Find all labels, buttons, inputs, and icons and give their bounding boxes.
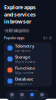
staticText: Database [15, 76, 33, 82]
staticText: Edge runtime [15, 71, 34, 75]
staticText: and services [4, 11, 36, 18]
staticText: Telemetry [15, 43, 34, 49]
staticText: Search [19, 97, 25, 99]
button[interactable]: All categories [4, 28, 30, 33]
staticText: Postgres 16 [15, 82, 32, 86]
button[interactable]: Storage [4, 53, 52, 64]
button[interactable]: Telemetry [4, 42, 52, 53]
staticText: Tap an app to open it in a new tab [18, 89, 38, 91]
button[interactable]: Database [4, 75, 52, 86]
staticText: All categories [9, 29, 28, 32]
button[interactable]: See all [43, 36, 52, 40]
staticText: Apps [30, 97, 34, 99]
button[interactable]: Home [7, 91, 17, 100]
staticText: Home [10, 97, 14, 99]
staticText: Object buckets [15, 60, 35, 64]
staticText: Popular apps [4, 36, 24, 40]
staticText: Explore apps [4, 4, 36, 11]
button[interactable]: Search [17, 91, 27, 100]
staticText: in browser [4, 18, 31, 25]
button[interactable]: Apps [27, 91, 37, 100]
staticText: Live metrics [15, 49, 30, 53]
staticText: See all [43, 36, 52, 40]
staticText: Storage [15, 54, 30, 60]
staticText: Functions [15, 65, 35, 71]
button[interactable]: Account [37, 91, 47, 100]
button[interactable]: Functions [4, 64, 52, 75]
staticText: Account [39, 97, 45, 99]
